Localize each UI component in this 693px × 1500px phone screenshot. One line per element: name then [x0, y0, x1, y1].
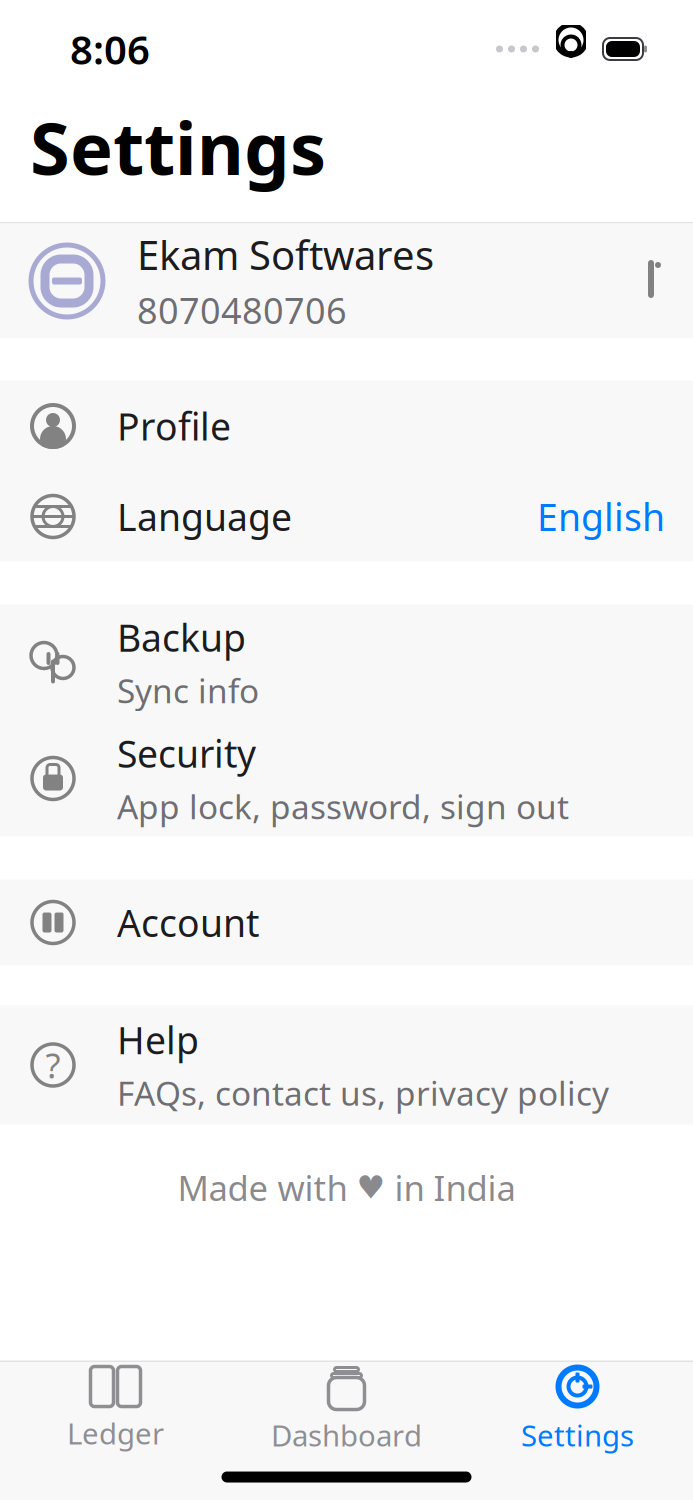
staticText: ? — [45, 1042, 60, 1088]
staticText: Ekam Softwares — [137, 228, 434, 281]
button[interactable]: Security — [0, 720, 693, 836]
staticText: Profile — [117, 401, 231, 451]
button[interactable]: Dashboard — [231, 1362, 462, 1454]
staticText: FAQs, contact us, privacy policy — [117, 1071, 609, 1115]
staticText: in India — [394, 1164, 515, 1210]
staticText: Account — [117, 898, 259, 947]
staticText: 8070480706 — [137, 286, 347, 334]
button[interactable]: Account — [0, 879, 693, 965]
button[interactable]: Language — [0, 471, 693, 561]
staticText: ♥ — [356, 1169, 385, 1206]
staticText: Sync info — [117, 668, 259, 712]
staticText: Settings — [30, 99, 326, 195]
staticText: Made with — [177, 1164, 347, 1210]
staticText: Settings — [521, 1415, 634, 1454]
button[interactable]: Backup — [0, 604, 693, 720]
staticText: Backup — [117, 613, 246, 662]
staticText: English — [537, 492, 665, 541]
button[interactable]: Ekam Softwares — [0, 223, 693, 338]
staticText: Dashboard — [271, 1415, 422, 1454]
button[interactable]: Ledger — [0, 1362, 231, 1454]
button[interactable]: Settings — [462, 1362, 693, 1454]
staticText: 8:06 — [70, 22, 150, 75]
staticText: Security — [117, 729, 256, 778]
staticText: Help — [117, 1015, 199, 1065]
staticText: Ledger — [67, 1413, 164, 1452]
button[interactable]: ? — [0, 1005, 693, 1124]
staticText: Language — [117, 492, 292, 541]
staticText: App lock, password, sign out — [117, 784, 569, 828]
button[interactable]: Profile — [0, 380, 693, 471]
